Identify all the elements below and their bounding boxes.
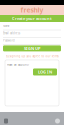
button[interactable]: Name <box>3 23 61 30</box>
button[interactable]: SIGN UP <box>3 45 61 51</box>
button[interactable]: Password <box>3 38 61 45</box>
staticText: Name <box>3 24 10 28</box>
staticText: Create your account <box>12 16 52 21</box>
staticText: Email address <box>3 31 20 35</box>
staticText: By signing up you agree to our Terms <box>5 54 58 58</box>
staticText: Have an account? <box>7 63 29 66</box>
button[interactable]: Create your account <box>0 15 64 22</box>
staticText: Password <box>3 39 15 42</box>
staticText: freshly <box>20 6 43 14</box>
button[interactable]: LOG IN <box>33 68 57 75</box>
staticText: LOG IN <box>38 69 52 75</box>
button[interactable]: Email address <box>3 30 61 38</box>
staticText: SIGN UP <box>24 46 40 51</box>
